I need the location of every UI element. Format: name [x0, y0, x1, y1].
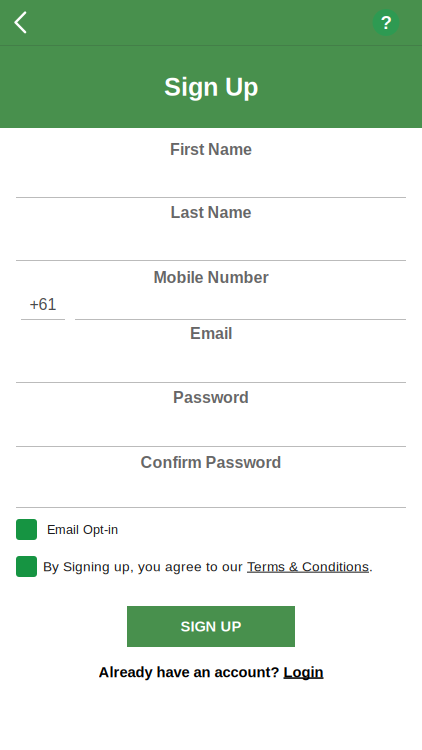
staticText: Already have an account? Login [98, 664, 323, 680]
staticText: Confirm Password [140, 454, 281, 471]
staticText: Sign Up [164, 73, 258, 101]
button[interactable]: SIGN UP [127, 606, 295, 647]
staticText: Email Opt-in [47, 522, 118, 537]
staticText: Email [190, 325, 232, 342]
button[interactable]: Already have an account? Login [98, 647, 323, 680]
staticText: SIGN UP [180, 618, 241, 635]
button[interactable]: By Signing up, you agree to our Terms & … [0, 540, 422, 577]
staticText: Mobile Number [153, 269, 268, 286]
staticText: Password [173, 389, 249, 406]
staticText: By Signing up, you agree to our Terms & … [43, 559, 373, 574]
staticText: Last Name [170, 204, 251, 221]
staticText: First Name [170, 141, 252, 158]
button[interactable]: Email Opt-in [0, 508, 422, 540]
staticText: ? [380, 12, 391, 33]
staticText: +61 [29, 296, 56, 313]
button[interactable]: Help [361, 0, 411, 45]
button[interactable]: Back [0, 0, 41, 45]
